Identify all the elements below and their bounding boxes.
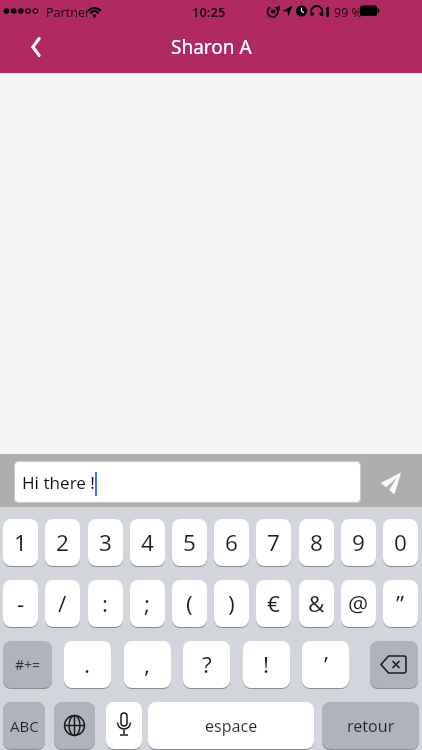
staticText: &: [308, 588, 325, 619]
button[interactable]: ;: [130, 580, 165, 627]
button[interactable]: [106, 702, 142, 749]
button[interactable]: [20, 32, 52, 62]
button[interactable]: retour: [322, 702, 419, 749]
button[interactable]: 9: [341, 519, 376, 566]
staticText: ’: [324, 649, 328, 680]
button[interactable]: 5: [172, 519, 207, 566]
staticText: :: [102, 588, 109, 619]
staticText: .: [84, 649, 91, 680]
staticText: (: [186, 588, 193, 619]
button[interactable]: 1: [3, 519, 38, 566]
button[interactable]: ): [214, 580, 249, 627]
staticText: 1: [14, 527, 27, 558]
staticText: 3: [99, 527, 112, 558]
staticText: retour: [347, 715, 395, 737]
staticText: @: [348, 588, 369, 619]
button[interactable]: [366, 459, 418, 503]
staticText: 5: [183, 527, 196, 558]
button[interactable]: [54, 702, 95, 749]
button[interactable]: 3: [88, 519, 123, 566]
button[interactable]: .: [64, 641, 111, 688]
button[interactable]: !: [243, 641, 290, 688]
button[interactable]: espace: [148, 702, 314, 749]
button[interactable]: ”: [383, 580, 418, 627]
button[interactable]: @: [341, 580, 376, 627]
staticText: 4: [141, 527, 154, 558]
button[interactable]: ABC: [3, 702, 45, 749]
button[interactable]: /: [45, 580, 80, 627]
button[interactable]: :: [88, 580, 123, 627]
staticText: 2: [56, 527, 69, 558]
staticText: ?: [202, 649, 212, 680]
button[interactable]: (: [172, 580, 207, 627]
staticText: 10:25: [192, 3, 226, 21]
staticText: ABC: [10, 716, 39, 736]
staticText: ;: [144, 588, 151, 619]
button[interactable]: 2: [45, 519, 80, 566]
staticText: /: [58, 588, 67, 619]
staticText: Hi there !: [22, 471, 95, 494]
button[interactable]: ’: [302, 641, 349, 688]
staticText: 8: [310, 527, 323, 558]
staticText: Partner: [46, 4, 91, 21]
staticText: Sharon A: [171, 34, 252, 60]
staticText: ,: [144, 649, 151, 680]
staticText: 7: [267, 527, 280, 558]
button[interactable]: ,: [124, 641, 171, 688]
button[interactable]: ?: [183, 641, 230, 688]
button[interactable]: 7: [256, 519, 291, 566]
staticText: ”: [396, 588, 405, 619]
staticText: €: [267, 588, 280, 619]
button[interactable]: 0: [383, 519, 418, 566]
button[interactable]: -: [3, 580, 38, 627]
staticText: !: [263, 649, 270, 680]
button[interactable]: 8: [299, 519, 334, 566]
staticText: -: [17, 588, 25, 619]
button[interactable]: #+=: [3, 641, 52, 688]
button[interactable]: Hi there !: [14, 461, 361, 503]
staticText: 6: [225, 527, 238, 558]
button[interactable]: [370, 641, 418, 688]
staticText: 9: [352, 527, 365, 558]
staticText: espace: [205, 715, 258, 737]
button[interactable]: €: [256, 580, 291, 627]
button[interactable]: 6: [214, 519, 249, 566]
staticText: ): [228, 588, 235, 619]
staticText: 99 %: [334, 4, 362, 21]
button[interactable]: 4: [130, 519, 165, 566]
button[interactable]: &: [299, 580, 334, 627]
staticText: 0: [394, 527, 407, 558]
staticText: #+=: [15, 655, 41, 674]
